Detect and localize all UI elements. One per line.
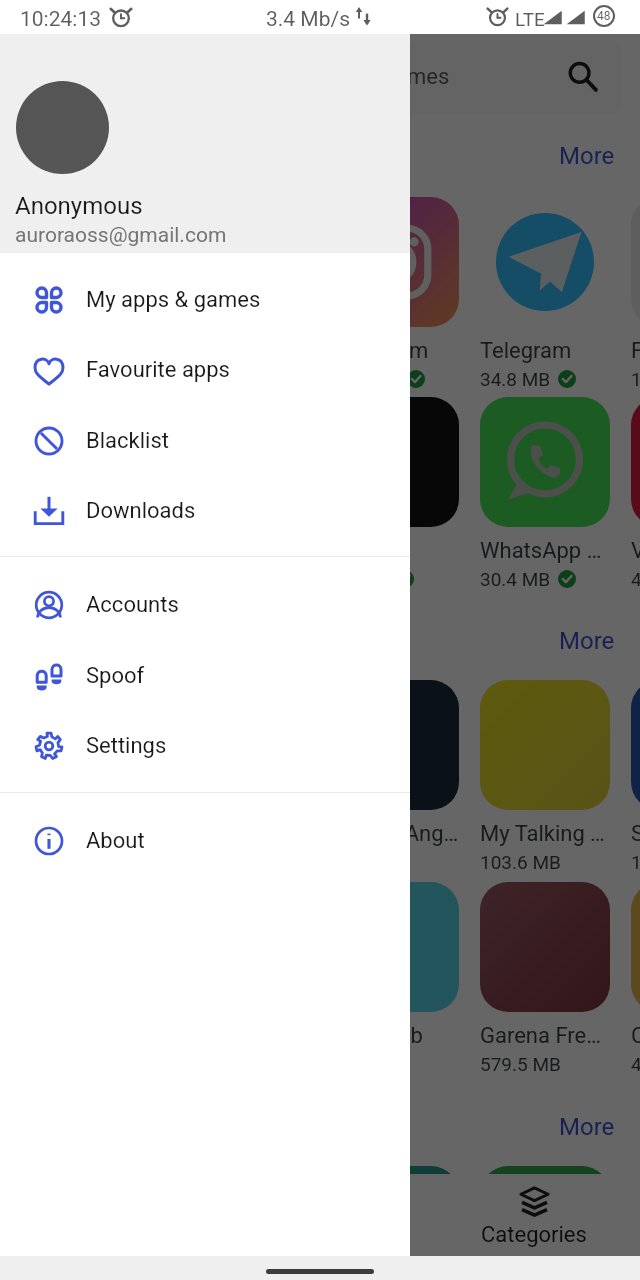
button[interactable]: Spoof — [0, 641, 410, 711]
staticText: Facebook — [631, 338, 640, 364]
staticText: Anonymous — [15, 192, 143, 220]
button[interactable]: Downloads — [0, 476, 410, 546]
button[interactable]: More — [559, 1113, 615, 1141]
staticText: 48 — [597, 9, 611, 23]
staticText: Hill Climb — [329, 1023, 423, 1049]
button[interactable]: Settings — [0, 711, 410, 781]
button[interactable]: More — [559, 627, 615, 655]
button[interactable]: Categories — [459, 1174, 609, 1256]
staticText: 579.5 MB — [480, 1053, 561, 1075]
staticText: 33 MB — [178, 368, 233, 390]
staticText: Telegram — [480, 338, 572, 364]
staticText: About — [86, 828, 145, 854]
staticText: Downloads — [86, 498, 196, 524]
staticText: 102 MB — [631, 851, 640, 873]
staticText: 424 MB — [631, 1053, 640, 1075]
staticText: 3.4 Mb/s — [266, 7, 350, 32]
staticText: Talking Angela — [329, 821, 459, 847]
staticText: 30.4 MB — [480, 568, 551, 590]
staticText: LTE — [515, 8, 545, 30]
staticText: Blacklist — [86, 428, 169, 454]
staticText: Clash Royale — [631, 1023, 640, 1049]
button[interactable]: Blacklist — [0, 406, 410, 476]
staticText: auroraoss@gmail.com — [15, 223, 227, 248]
staticText: 40.1 MB — [631, 568, 640, 590]
staticText: Accounts — [86, 592, 179, 618]
staticText: Sonic Dash — [631, 821, 640, 847]
staticText: 34.8 MB — [480, 368, 551, 390]
staticText: Search apps & games — [237, 64, 450, 90]
staticText: Garena Free ... — [480, 1023, 610, 1049]
button[interactable]: Accounts — [0, 570, 410, 640]
staticText: 10:24:13 — [20, 7, 101, 32]
button[interactable]: My apps & games — [0, 265, 410, 335]
staticText: WhatsApp M... — [480, 538, 610, 564]
button[interactable]: Favourite apps — [0, 335, 410, 405]
staticText: Favourite apps — [86, 357, 230, 383]
staticText: Settings — [86, 733, 167, 759]
staticText: TikTok — [329, 538, 395, 564]
staticText: My Talking T... — [480, 821, 610, 847]
staticText: Categories — [481, 1222, 587, 1248]
staticText: Viber — [631, 538, 640, 564]
button[interactable]: About — [0, 806, 410, 876]
staticText: 1.0 GB — [631, 368, 640, 390]
staticText: Instagram — [329, 338, 429, 364]
staticText: Messenger — [178, 538, 287, 564]
staticText: My apps & games — [86, 287, 261, 313]
button[interactable]: More — [559, 142, 615, 170]
staticText: Spoof — [86, 663, 145, 689]
staticText: 103.6 MB — [480, 851, 561, 873]
